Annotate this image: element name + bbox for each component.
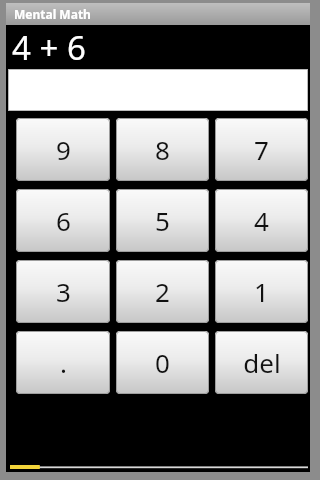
button[interactable]: 7	[215, 118, 308, 181]
button[interactable]: 3	[16, 260, 110, 323]
button[interactable]: 0	[116, 331, 209, 394]
staticText: 0	[155, 345, 170, 380]
staticText: 2	[155, 274, 170, 309]
staticText: 8	[155, 132, 170, 167]
staticText: 7	[254, 132, 269, 167]
staticText: 4	[254, 203, 269, 238]
button[interactable]: 1	[215, 260, 308, 323]
button[interactable]	[8, 69, 308, 111]
button[interactable]: 2	[116, 260, 209, 323]
staticText: 4 + 6	[12, 25, 86, 69]
button[interactable]: 5	[116, 189, 209, 252]
staticText: 5	[155, 203, 170, 238]
staticText: 6	[56, 203, 71, 238]
staticText: del	[243, 345, 281, 380]
button[interactable]: Delete	[215, 331, 308, 394]
button[interactable]: 8	[116, 118, 209, 181]
button[interactable]: 6	[16, 189, 110, 252]
button[interactable]: .	[16, 331, 110, 394]
staticText: 3	[56, 274, 71, 309]
button[interactable]: 4	[215, 189, 308, 252]
staticText: 1	[254, 274, 269, 309]
staticText: Mental Math	[14, 6, 91, 22]
button[interactable]: 9	[16, 118, 110, 181]
staticText: 9	[56, 132, 71, 167]
staticText: .	[60, 345, 67, 380]
